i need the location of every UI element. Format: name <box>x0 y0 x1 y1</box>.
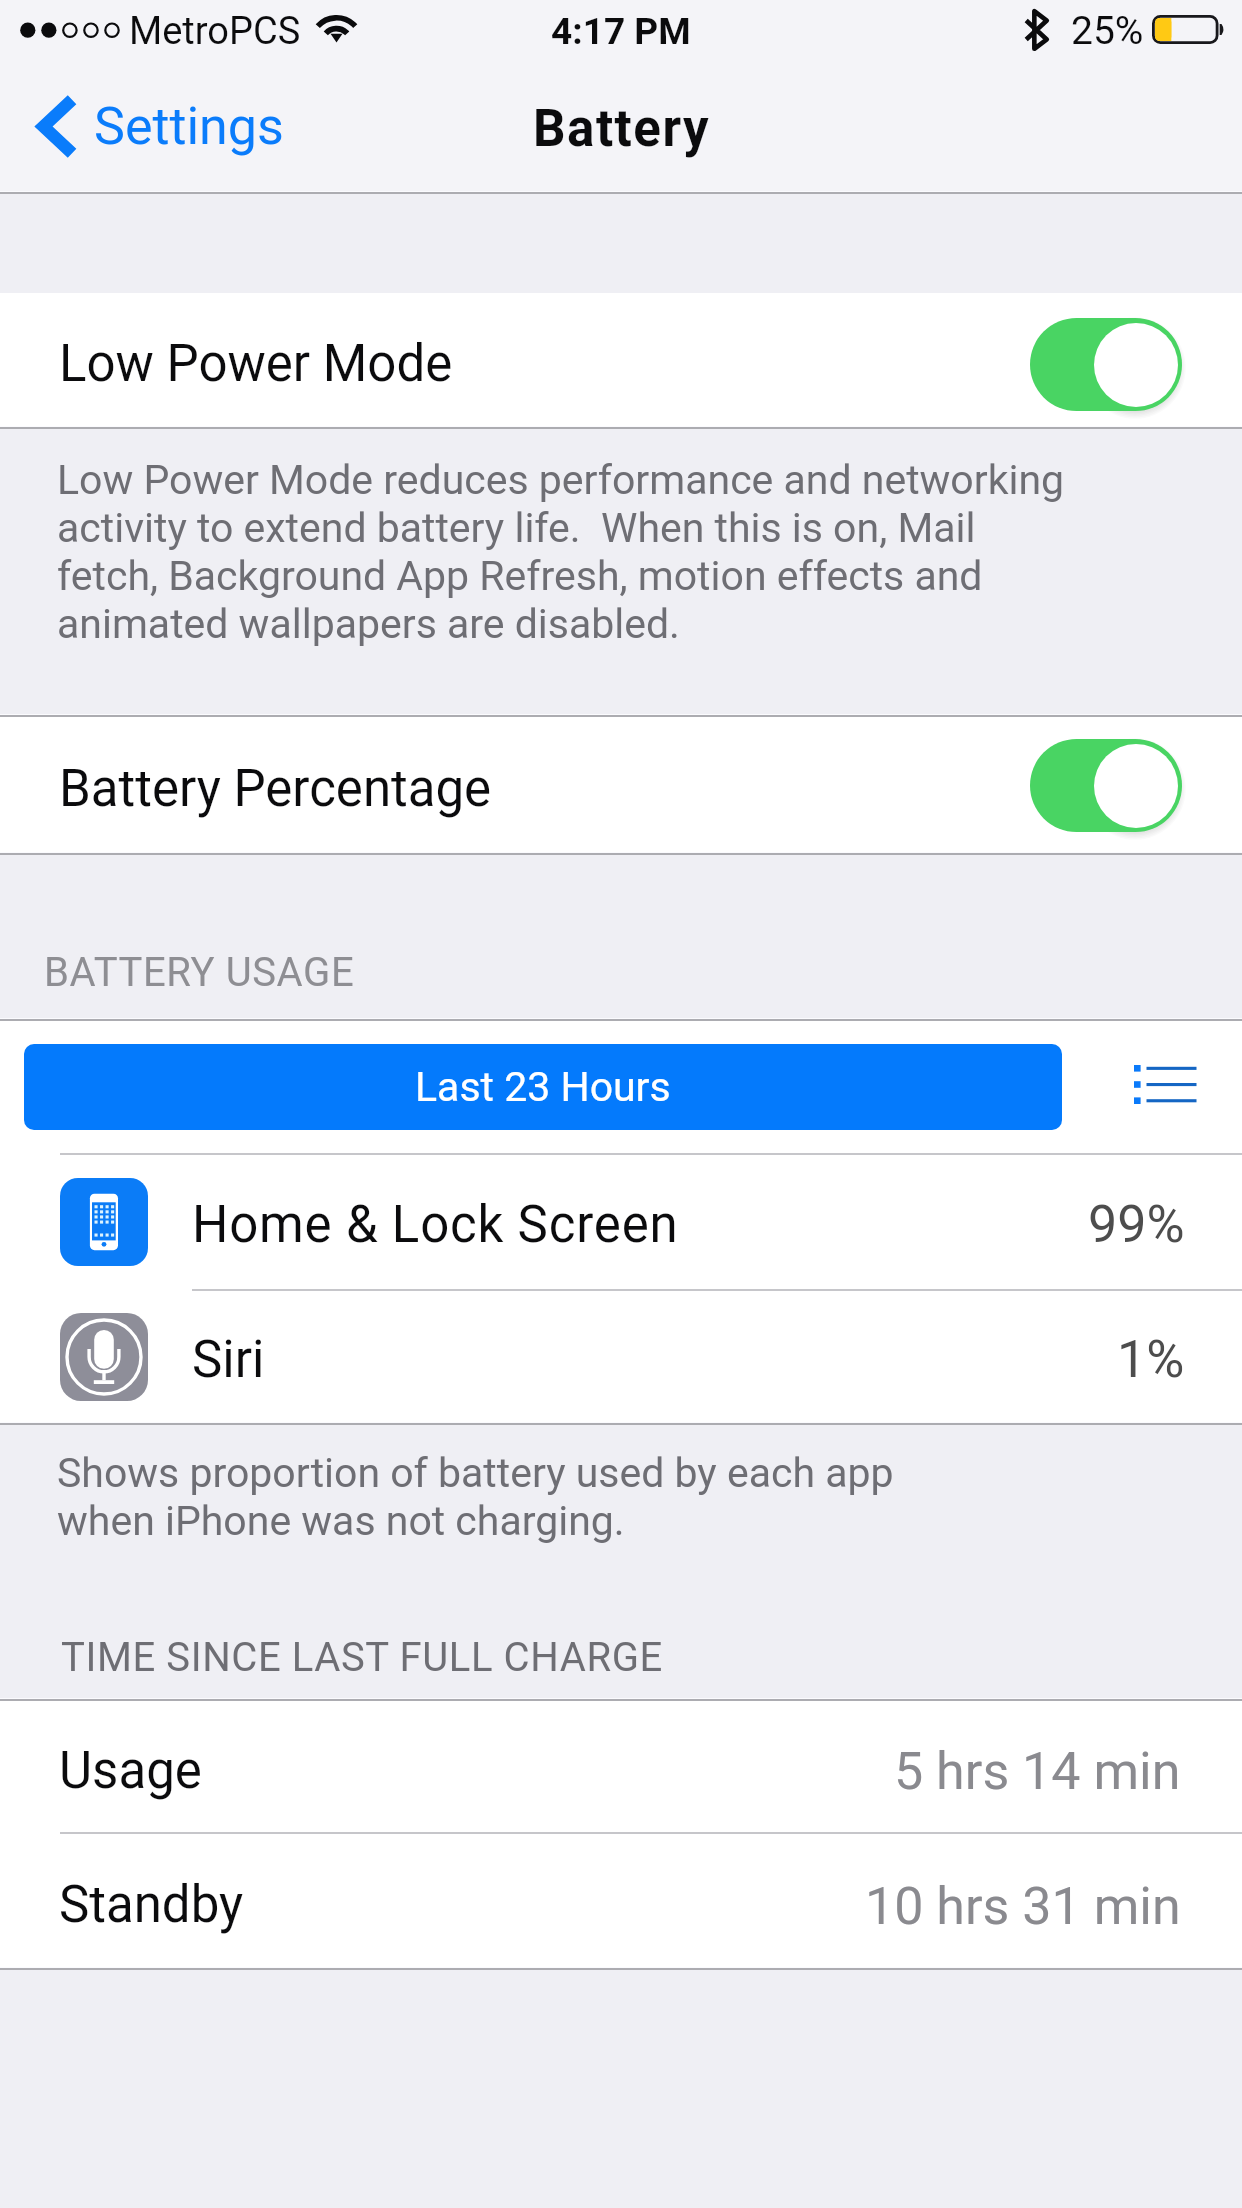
staticText: when iPhone was not charging. <box>57 1497 625 1545</box>
button[interactable]: Settings <box>0 60 284 192</box>
staticText: Battery Percentage <box>59 759 492 819</box>
button[interactable]: Home & Lock Screen <box>0 1155 1242 1289</box>
button[interactable]: Standby <box>0 1834 1242 1968</box>
staticText: Usage <box>59 1741 202 1801</box>
staticText: Siri <box>192 1330 265 1390</box>
staticText: Battery <box>533 99 711 159</box>
staticText: fetch, Background App Refresh, motion ef… <box>57 552 983 600</box>
staticText: Shows proportion of battery used by each… <box>57 1449 894 1497</box>
staticText: 1% <box>1117 1329 1185 1390</box>
staticText: BATTERY USAGE <box>44 949 355 996</box>
staticText: Low Power Mode reduces performance and n… <box>57 456 1065 504</box>
staticText: animated wallpapers are disabled. <box>57 600 680 648</box>
staticText: 4:17 PM <box>551 10 691 53</box>
button[interactable]: Low Power Mode <box>0 293 1242 427</box>
staticText: Home & Lock Screen <box>192 1195 679 1255</box>
staticText: 25% <box>1071 8 1144 54</box>
button[interactable]: Battery Percentage toggle, on <box>1030 739 1182 832</box>
staticText: Standby <box>59 1875 244 1935</box>
staticText: 99% <box>1088 1194 1185 1255</box>
staticText: Low Power Mode <box>59 334 453 394</box>
staticText: TIME SINCE LAST FULL CHARGE <box>61 1634 663 1681</box>
staticText: MetroPCS <box>129 9 301 54</box>
button[interactable]: Show usage list <box>1094 1044 1242 1130</box>
button[interactable]: Last 23 Hours <box>24 1044 1062 1130</box>
staticText: 10 hrs 31 min <box>865 1876 1181 1937</box>
button[interactable]: Battery Percentage <box>0 717 1242 853</box>
staticText: Last 23 Hours <box>415 1063 671 1111</box>
staticText: activity to extend battery life. When th… <box>57 504 976 552</box>
button[interactable]: Usage <box>0 1701 1242 1832</box>
button[interactable]: Siri <box>0 1291 1242 1423</box>
button[interactable]: Low Power Mode toggle, on <box>1030 318 1182 411</box>
staticText: 5 hrs 14 min <box>894 1741 1181 1802</box>
staticText: Settings <box>94 96 284 157</box>
